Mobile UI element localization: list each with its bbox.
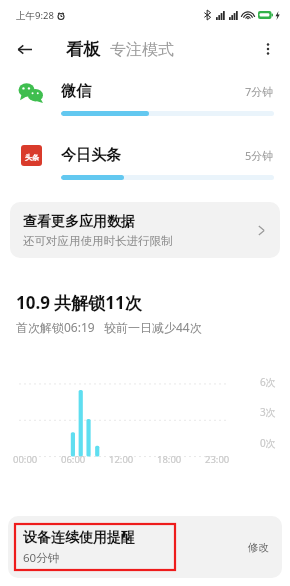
staticText: 上午9:28 [16, 9, 54, 22]
staticText: 10.9 共解锁11次 [16, 291, 142, 314]
button[interactable]: More options [252, 33, 284, 65]
staticText: 今日头条 [61, 146, 121, 165]
staticText: 18:00 [157, 453, 182, 466]
button[interactable]: 看板 [66, 39, 100, 60]
button[interactable]: 查看更多应用数据 [10, 202, 280, 258]
button[interactable]: 头条 [0, 140, 290, 180]
button[interactable]: Back [8, 33, 40, 65]
button[interactable]: 设备连续使用提醒 [8, 516, 282, 578]
staticText: 7分钟 [245, 84, 274, 99]
staticText: 还可对应用使用时长进行限制 [23, 234, 173, 248]
staticText: 看板 [66, 39, 100, 60]
staticText: 60分钟 [23, 550, 60, 566]
staticText: 06:00 [61, 453, 86, 466]
staticText: 0次 [260, 436, 276, 450]
staticText: 6次 [260, 375, 276, 389]
button[interactable]: 微信 [0, 76, 290, 116]
staticText: 微信 [61, 82, 91, 101]
staticText: 较前一日减少44次 [104, 319, 202, 335]
staticText: 00:00 [13, 453, 38, 466]
staticText: 专注模式 [110, 40, 174, 60]
staticText: 23:00 [205, 453, 230, 466]
staticText: 修改 [248, 541, 269, 554]
staticText: 5分钟 [245, 148, 274, 163]
staticText: 设备连续使用提醒 [23, 529, 135, 547]
staticText: 首次解锁06:19 [16, 319, 95, 335]
staticText: 头条 [25, 153, 39, 162]
staticText: 查看更多应用数据 [23, 213, 135, 231]
staticText: 12:00 [109, 453, 134, 466]
button[interactable]: 专注模式 [110, 40, 174, 60]
staticText: 3次 [260, 405, 276, 419]
